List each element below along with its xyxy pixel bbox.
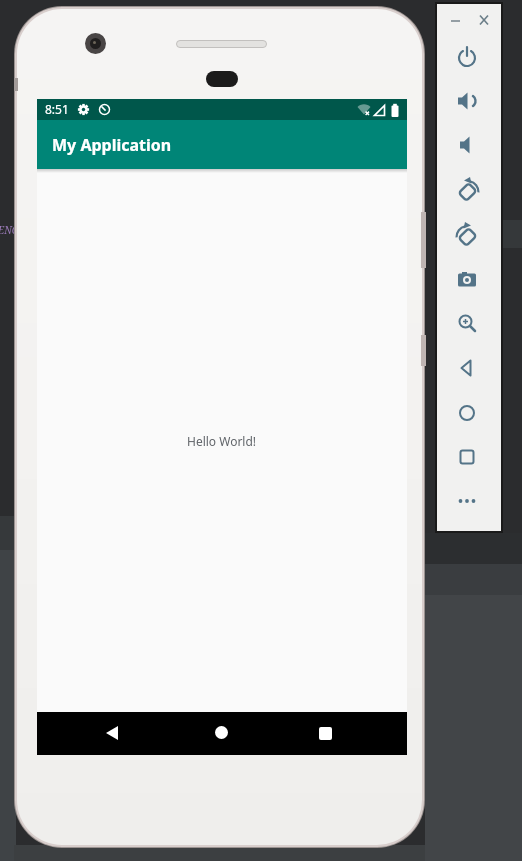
button[interactable] bbox=[215, 726, 228, 739]
staticText: 8:51 bbox=[45, 101, 69, 117]
button[interactable] bbox=[453, 87, 481, 115]
button[interactable] bbox=[476, 10, 498, 32]
button[interactable] bbox=[453, 175, 481, 203]
staticText: ENC bbox=[0, 223, 19, 237]
button[interactable] bbox=[453, 265, 481, 293]
button[interactable] bbox=[453, 443, 481, 471]
staticText: My Application bbox=[52, 134, 172, 156]
button[interactable] bbox=[453, 399, 481, 427]
button[interactable] bbox=[446, 10, 468, 32]
button[interactable] bbox=[453, 354, 481, 382]
button[interactable] bbox=[453, 131, 481, 159]
button[interactable] bbox=[453, 487, 481, 515]
button[interactable] bbox=[453, 43, 481, 71]
button[interactable] bbox=[453, 220, 481, 248]
button[interactable]: My Application bbox=[37, 120, 407, 169]
button[interactable] bbox=[319, 727, 332, 740]
button[interactable] bbox=[105, 726, 119, 740]
button[interactable]: Hello World! bbox=[187, 433, 257, 449]
button[interactable] bbox=[453, 309, 481, 337]
